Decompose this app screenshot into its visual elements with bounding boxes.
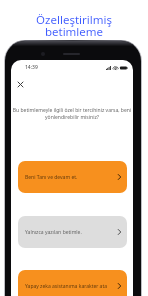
button[interactable]: Yapay zeka asistanıma karakter ata	[18, 270, 127, 296]
staticText: Bu betimlemeyle ilgili özel bir tercihin…	[11, 107, 133, 121]
button[interactable]: Kapat	[14, 78, 27, 91]
staticText: Yalnızca yazıları betimle.	[25, 229, 118, 236]
staticText: Özelleştirilmiş betimleme	[36, 12, 112, 39]
button[interactable]: Beni Tanı ve devam et.	[18, 161, 127, 193]
staticText: 14:39	[25, 64, 38, 71]
staticText: Beni Tanı ve devam et.	[25, 174, 118, 181]
staticText: Yapay zeka asistanıma karakter ata	[25, 283, 118, 290]
button[interactable]: Yalnızca yazıları betimle.	[18, 216, 127, 248]
